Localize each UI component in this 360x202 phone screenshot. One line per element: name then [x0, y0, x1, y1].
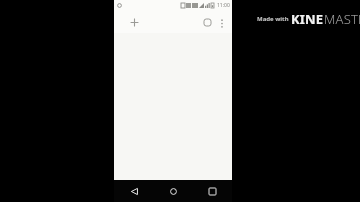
staticText: MASTER: [324, 10, 360, 28]
button[interactable]: Search: [200, 15, 215, 30]
button[interactable]: Add: [126, 14, 142, 30]
staticText: KINE: [291, 10, 324, 28]
button[interactable]: More options: [215, 16, 229, 30]
button[interactable]: Home: [154, 180, 193, 202]
staticText: Made with: [257, 15, 291, 23]
staticText: 11:00: [217, 2, 230, 9]
button[interactable]: Recent apps: [193, 180, 232, 202]
button[interactable]: Back: [114, 180, 154, 202]
